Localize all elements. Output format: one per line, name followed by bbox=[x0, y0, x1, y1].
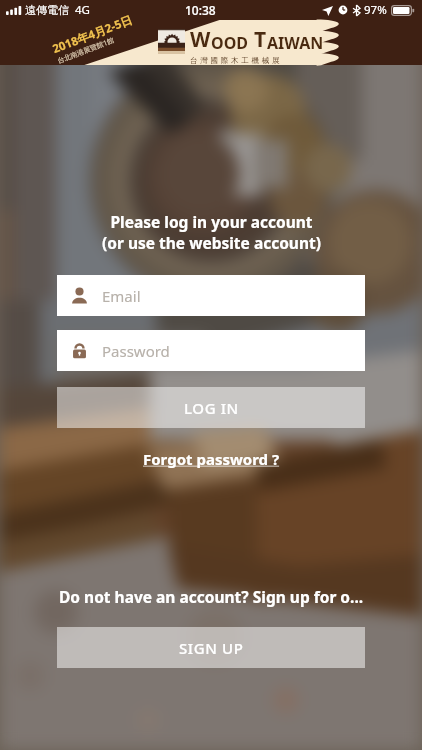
staticText: Email bbox=[102, 286, 141, 306]
button[interactable]: Forgot password ? bbox=[143, 449, 280, 469]
staticText: W bbox=[190, 25, 211, 54]
staticText: Password bbox=[102, 341, 170, 361]
staticText: Please log in your account (or use the w… bbox=[102, 211, 321, 254]
staticText: 台 灣 國 際 木 工 機 械 展 bbox=[190, 55, 280, 65]
staticText: 10:38 bbox=[185, 2, 216, 18]
staticText: LOG IN bbox=[184, 398, 239, 418]
button[interactable]: LOG IN bbox=[57, 387, 365, 428]
staticText: SIGN UP bbox=[179, 638, 244, 658]
button[interactable]: Email bbox=[57, 275, 365, 316]
staticText: T bbox=[254, 25, 267, 54]
staticText: 台北南港展覽館1館 bbox=[56, 35, 116, 66]
staticText: 遠傳電信 bbox=[25, 3, 69, 17]
staticText: 2018年4月2-5日 bbox=[50, 12, 135, 57]
staticText: 4G bbox=[75, 2, 90, 18]
button[interactable]: SIGN UP bbox=[57, 627, 365, 668]
staticText: 97% bbox=[364, 2, 387, 18]
staticText: OOD bbox=[211, 32, 249, 54]
staticText: Do not have an account? Sign up for o... bbox=[59, 586, 364, 607]
staticText: AIWAN bbox=[267, 32, 324, 54]
button[interactable]: Password bbox=[57, 330, 365, 371]
